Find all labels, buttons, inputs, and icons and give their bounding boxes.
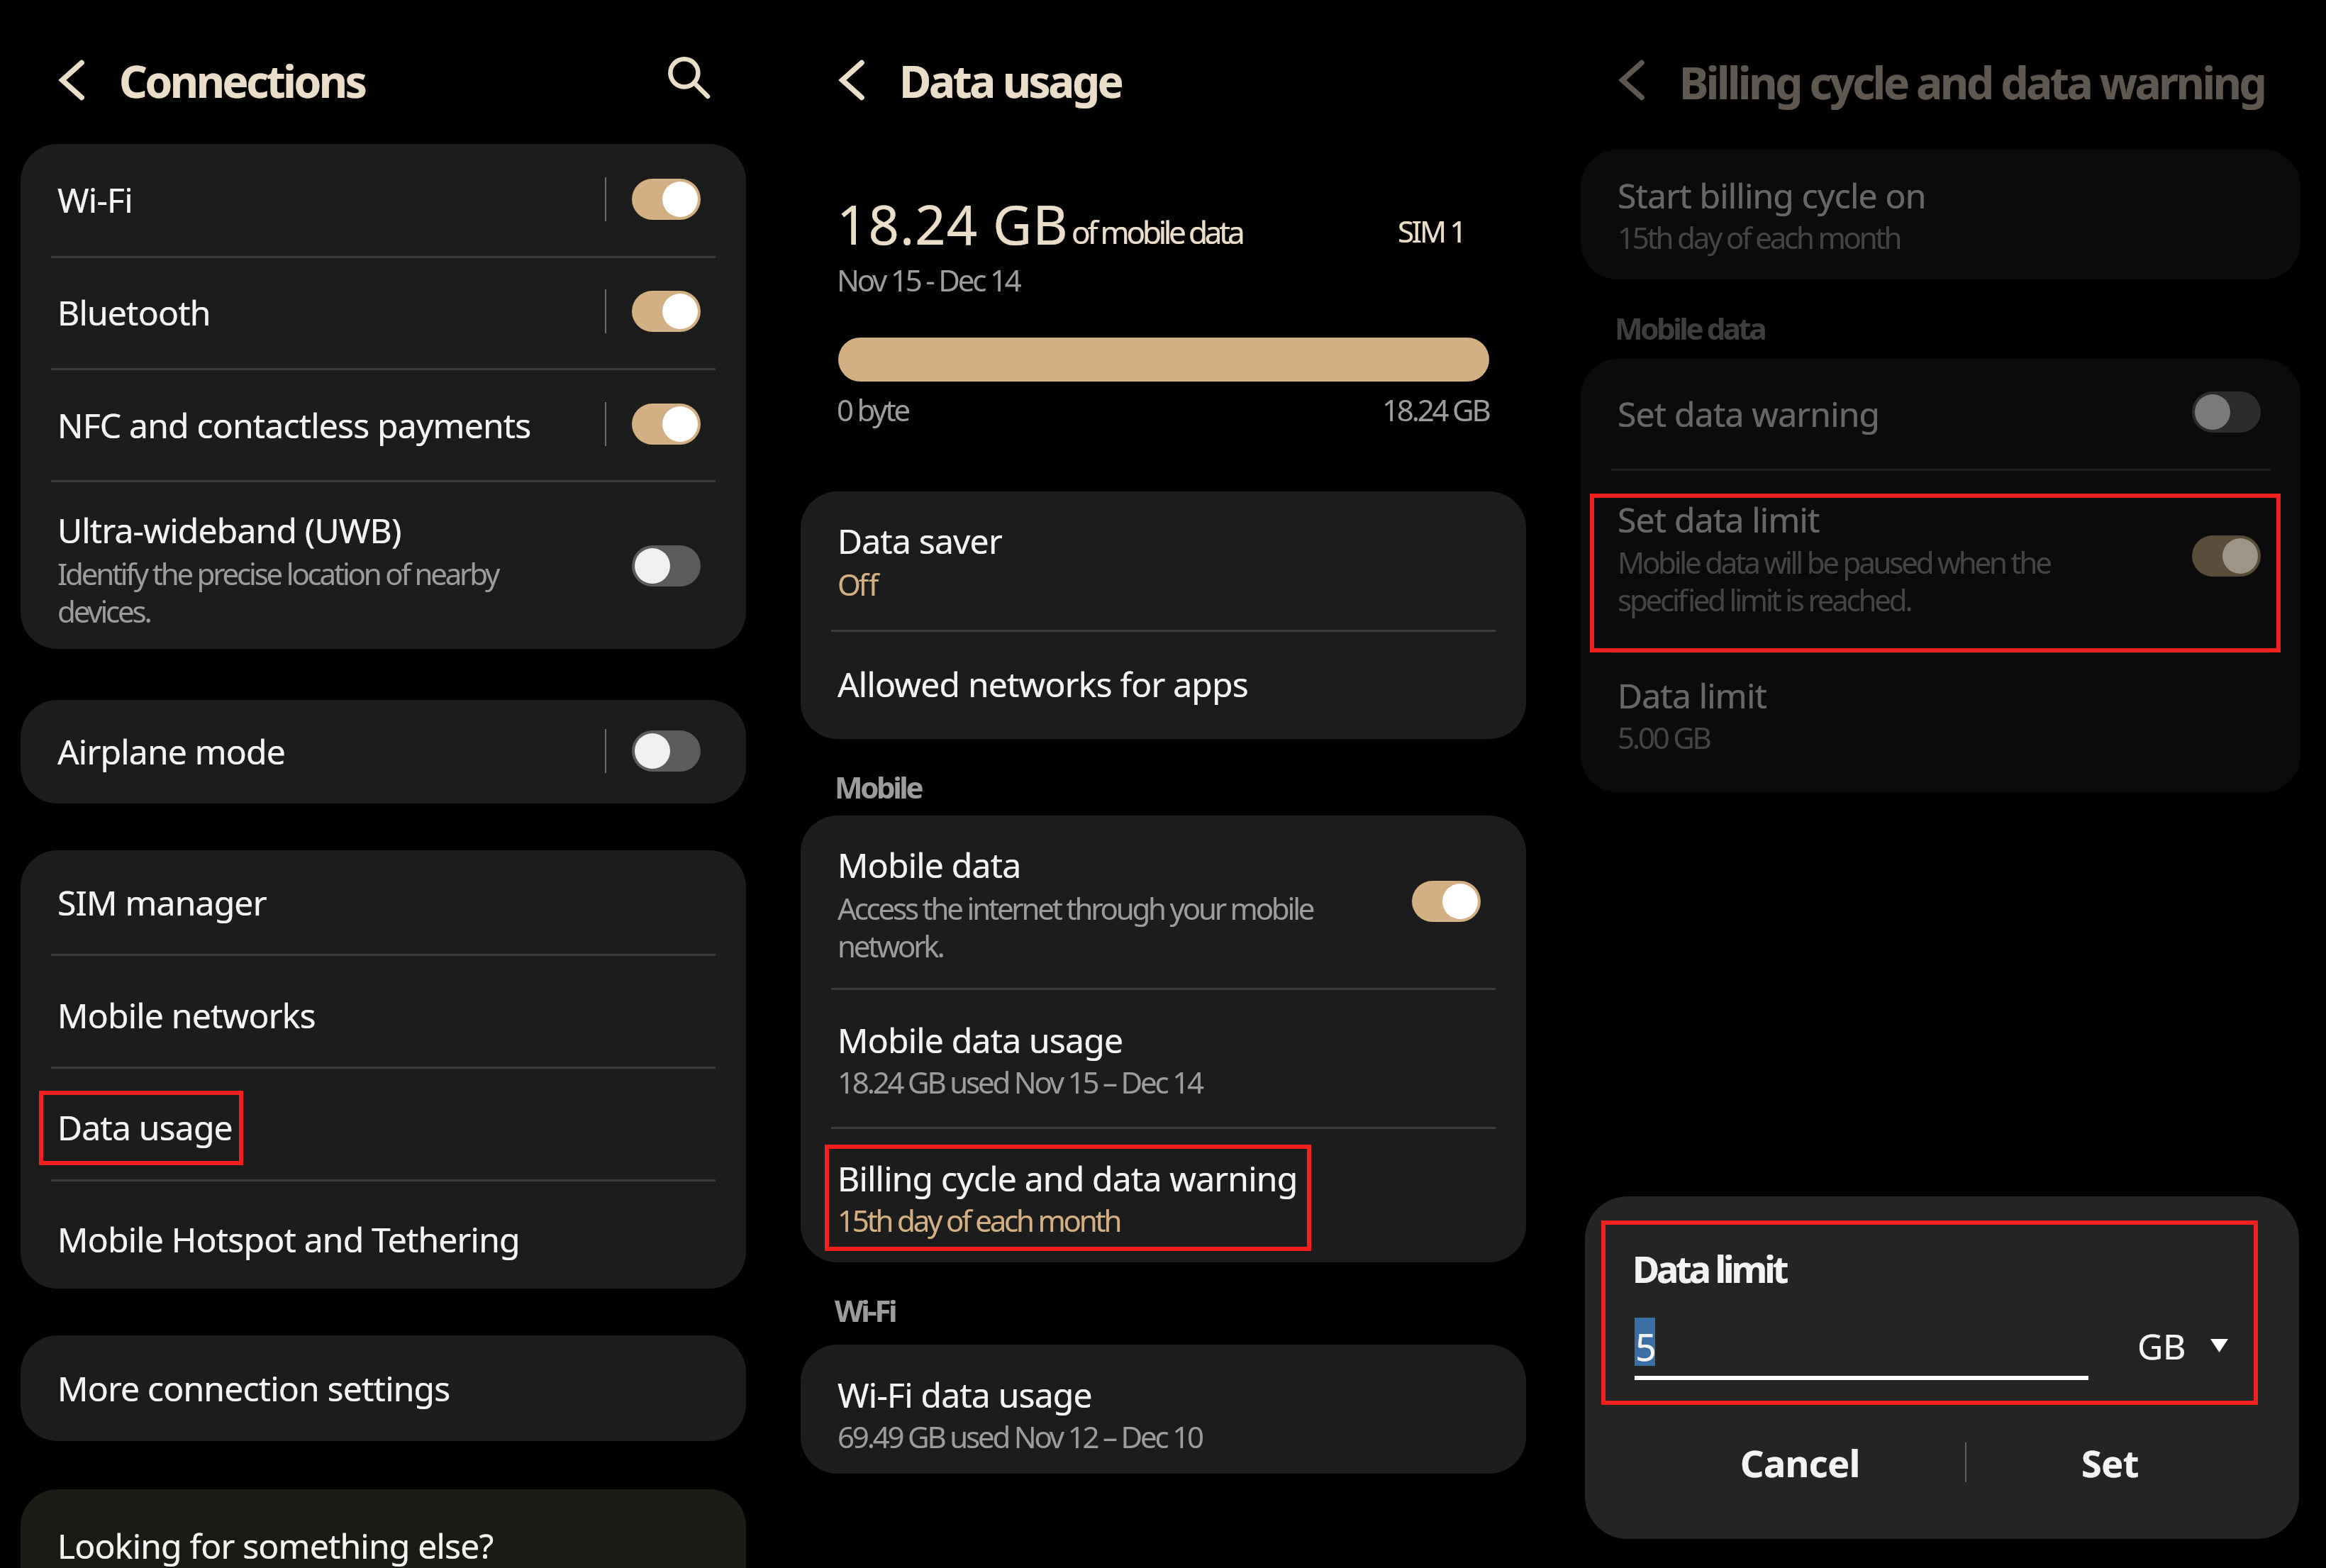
button[interactable]: Billing cycle and data warning (801, 1128, 1526, 1262)
staticText: SIM 1 (1398, 211, 1465, 251)
button[interactable]: Switch on (632, 404, 701, 445)
staticText: Data usage (57, 1104, 233, 1150)
button[interactable]: NFC and contactless payments (21, 369, 746, 481)
button[interactable]: Wi-Fi (21, 144, 746, 255)
staticText: Mobile (835, 767, 922, 807)
button[interactable]: Switch off (632, 730, 701, 772)
button[interactable]: Data saver (801, 491, 1526, 630)
button[interactable]: Switch off (632, 545, 701, 586)
button[interactable]: Mobile Hotspot and Tethering (21, 1181, 746, 1289)
button[interactable]: Cancel (1585, 1420, 2015, 1505)
staticText: Cancel (1740, 1438, 1860, 1488)
button[interactable]: Wi-Fi data usage (801, 1345, 1526, 1474)
staticText: Start billing cycle on (1618, 172, 1926, 218)
button[interactable]: Start billing cycle on (1581, 150, 2300, 279)
staticText: Wi-Fi (57, 177, 133, 223)
staticText: NFC and contactless payments (57, 402, 531, 448)
button[interactable]: Ultra-wideband (UWB) (21, 482, 746, 649)
staticText: Data usage (899, 51, 1122, 111)
button[interactable]: Mobile data (801, 816, 1526, 988)
staticText: Set data limit (1618, 496, 1820, 543)
staticText: Identify the precise location of nearby … (57, 555, 499, 630)
button[interactable]: Navigate up (827, 55, 877, 105)
staticText: 15th day of each month (1618, 217, 1901, 257)
staticText: Mobile data will be paused when the spec… (1618, 544, 2050, 619)
button[interactable]: Set (1968, 1420, 2252, 1505)
button[interactable]: Allowed networks for apps (801, 632, 1526, 739)
staticText: More connection settings (57, 1365, 450, 1411)
staticText: Mobile data usage (838, 1017, 1123, 1063)
button[interactable]: Switch on (632, 179, 701, 220)
staticText: Bluetooth (57, 289, 211, 335)
button[interactable]: SIM manager (21, 850, 746, 954)
staticText: Access the internet through your mobile … (838, 890, 1313, 965)
staticText: Connections (119, 51, 365, 111)
button[interactable]: Data usage (21, 1068, 746, 1180)
button[interactable]: Airplane mode (21, 700, 746, 804)
staticText: 5.00 GB (1618, 717, 1710, 757)
staticText: Mobile Hotspot and Tethering (57, 1216, 520, 1262)
button[interactable]: Mobile data usage (801, 989, 1526, 1128)
button[interactable]: Switch on (632, 291, 701, 332)
staticText: 15th day of each month (838, 1200, 1120, 1240)
staticText: Data limit (1632, 1243, 1786, 1294)
button[interactable]: Switch off (2192, 391, 2261, 433)
staticText: 18.24 GB (1382, 389, 1489, 430)
staticText: Airplane mode (57, 728, 286, 774)
button[interactable]: Bluetooth (21, 255, 746, 368)
button[interactable]: Mobile networks (21, 955, 746, 1067)
staticText: Set (2081, 1438, 2139, 1488)
staticText: GB (2137, 1322, 2186, 1370)
staticText: Data limit (1618, 672, 1767, 718)
staticText: 5 (1635, 1321, 1657, 1372)
staticText: 18.24 GB (837, 187, 1069, 261)
staticText: Billing cycle and data warning (1679, 52, 2265, 112)
staticText: 69.49 GB used Nov 12 – Dec 10 (838, 1416, 1202, 1457)
staticText: Allowed networks for apps (838, 661, 1248, 707)
staticText: Off (838, 564, 877, 604)
button[interactable]: Navigate up (1607, 55, 1657, 105)
button[interactable]: Switch on (2192, 535, 2261, 577)
staticText: Wi-Fi data usage (838, 1372, 1092, 1418)
button[interactable]: Set data warning (1581, 359, 2300, 469)
button[interactable]: Set data limit (1581, 470, 2300, 651)
staticText: Ultra-wideband (UWB) (57, 507, 401, 553)
staticText: Nov 15 - Dec 14 (837, 260, 1020, 300)
staticText: 18.24 GB used Nov 15 – Dec 14 (838, 1062, 1202, 1102)
staticText: Wi-Fi (835, 1290, 896, 1330)
button[interactable]: Looking for something else? (21, 1489, 746, 1568)
button[interactable]: Search (660, 49, 718, 107)
staticText: Billing cycle and data warning (838, 1155, 1298, 1201)
staticText: Data saver (838, 518, 1002, 564)
staticText: Mobile data (838, 842, 1021, 888)
staticText: Mobile networks (57, 992, 316, 1038)
staticText: 0 byte (837, 389, 909, 430)
staticText: Mobile data (1615, 308, 1765, 348)
staticText: of mobile data (1072, 211, 1242, 253)
staticText: Set data warning (1618, 391, 1880, 437)
staticText: SIM manager (57, 879, 267, 925)
button[interactable]: Data limit (1581, 652, 2300, 792)
button[interactable]: Switch on (1412, 881, 1481, 922)
staticText: Looking for something else? (57, 1523, 494, 1568)
button[interactable]: More connection settings (21, 1335, 746, 1441)
button[interactable]: Navigate up (47, 55, 96, 105)
